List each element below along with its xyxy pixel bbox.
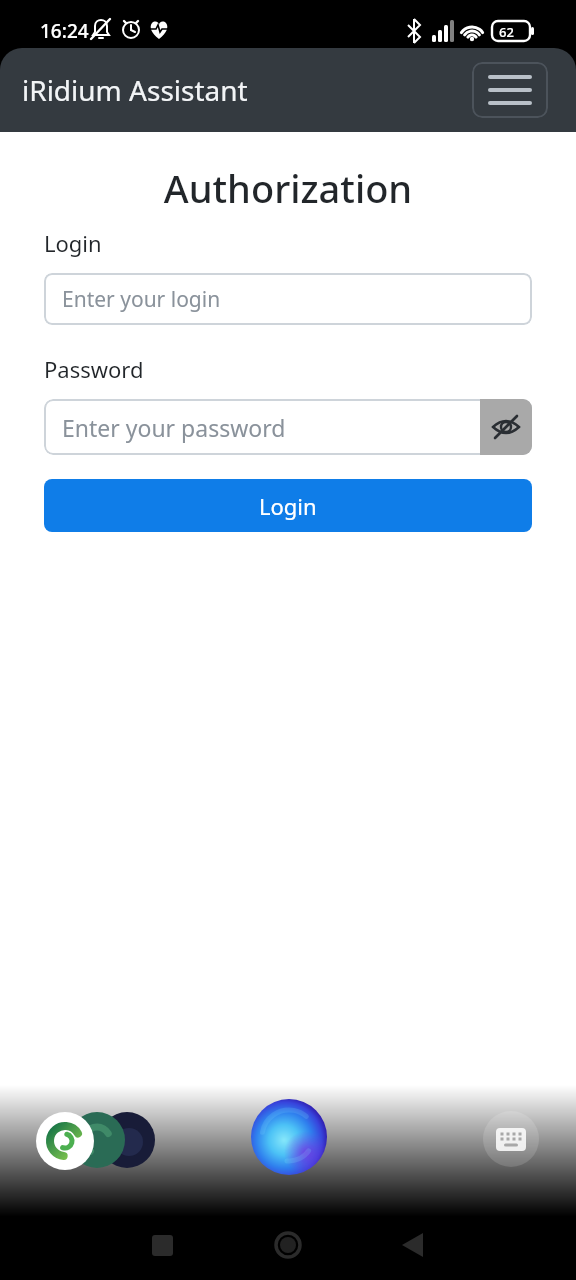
- staticText: Login: [44, 228, 102, 258]
- staticText: Password: [44, 354, 144, 384]
- button[interactable]: [140, 1222, 186, 1268]
- button[interactable]: [483, 1111, 539, 1167]
- staticText: 62: [499, 23, 514, 41]
- button[interactable]: Enter your login: [44, 273, 532, 325]
- staticText: 16:24: [40, 18, 89, 44]
- button[interactable]: [250, 1098, 328, 1176]
- staticText: Enter your password: [62, 412, 286, 443]
- staticText: Authorization: [0, 162, 576, 214]
- button[interactable]: Login: [44, 479, 532, 532]
- button[interactable]: [480, 399, 532, 455]
- staticText: Login: [259, 491, 317, 521]
- button[interactable]: [472, 62, 548, 118]
- button[interactable]: [390, 1222, 436, 1268]
- button[interactable]: [265, 1222, 311, 1268]
- button[interactable]: [36, 1112, 94, 1170]
- button[interactable]: Enter your password: [44, 399, 532, 455]
- staticText: iRidium Assistant: [22, 71, 248, 109]
- staticText: Enter your login: [62, 285, 221, 314]
